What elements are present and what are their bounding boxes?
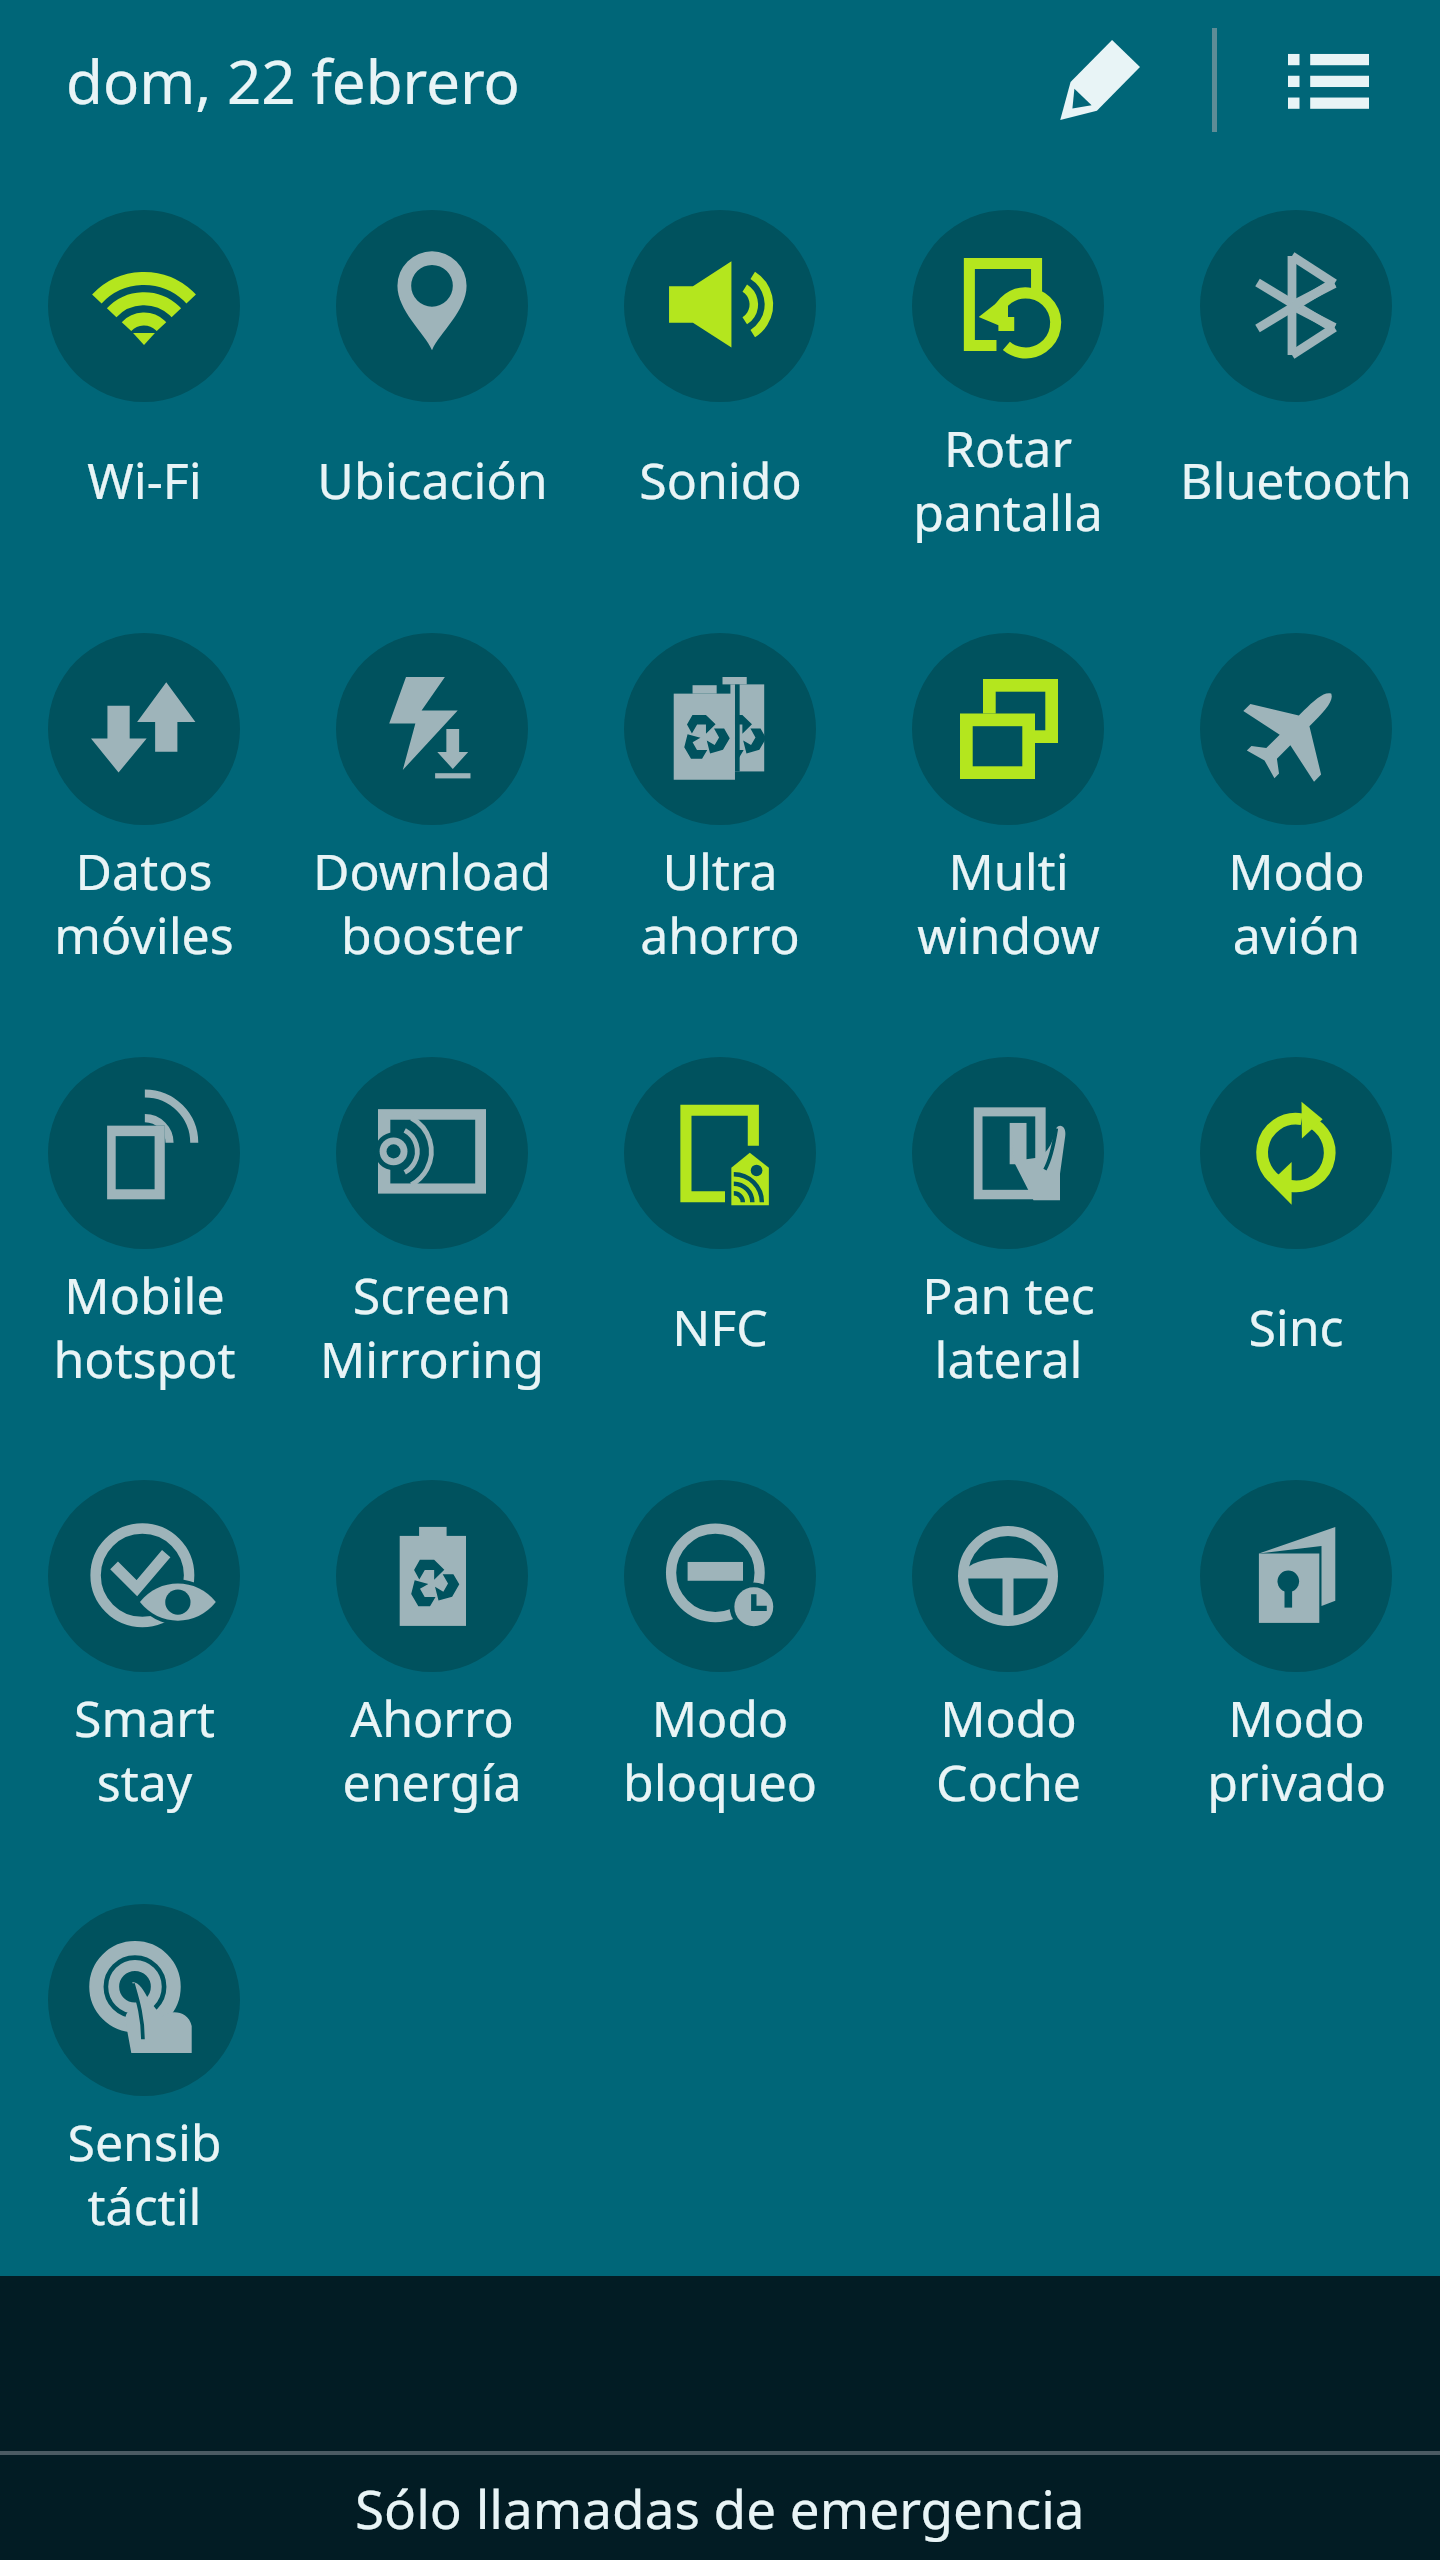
staticText: Sinc [1248,1293,1344,1361]
staticText: Ultra ahorro [640,837,800,969]
button[interactable]: NFC [576,1057,864,1397]
button[interactable]: Mobile hotspot [0,1057,288,1397]
staticText: Pan tec lateral [922,1261,1095,1393]
staticText: Bluetooth [1180,446,1412,514]
button[interactable]: Download booster [288,633,576,973]
staticText: Download booster [313,837,551,969]
button[interactable]: Sonido [576,210,864,550]
button[interactable]: Ubicación [288,210,576,550]
staticText: Modo bloqueo [623,1684,817,1816]
button[interactable]: Datos móviles [0,633,288,973]
staticText: Wi-Fi [87,446,202,514]
staticText: Sólo llamadas de emergencia [355,2472,1085,2544]
staticText: Modo Coche [936,1684,1081,1816]
button[interactable]: Ahorro energía [288,1480,576,1820]
staticText: Modo avión [1228,837,1365,969]
staticText: Smart stay [74,1684,215,1816]
staticText: Ahorro energía [342,1684,522,1816]
button[interactable]: Wi-Fi [0,210,288,550]
button[interactable]: Smart stay [0,1480,288,1820]
button[interactable]: Sinc [1152,1057,1440,1397]
staticText: Modo privado [1207,1684,1386,1816]
button[interactable]: Edit [1030,10,1170,150]
button[interactable]: Ultra ahorro [576,633,864,973]
button[interactable]: Sensib táctil [0,1904,288,2244]
button[interactable]: Rotar pantalla [864,210,1152,550]
button[interactable]: Modo bloqueo [576,1480,864,1820]
button[interactable]: Screen Mirroring [288,1057,576,1397]
button[interactable]: Bluetooth [1152,210,1440,550]
staticText: Ubicación [317,446,548,514]
button[interactable]: Modo Coche [864,1480,1152,1820]
button[interactable]: Multi window [864,633,1152,973]
staticText: Mobile hotspot [53,1261,236,1393]
button[interactable]: Modo avión [1152,633,1440,973]
button[interactable]: Pan tec lateral [864,1057,1152,1397]
staticText: Multi window [917,837,1100,969]
staticText: Screen Mirroring [320,1261,544,1393]
staticText: Sonido [639,446,802,514]
button[interactable]: Modo privado [1152,1480,1440,1820]
staticText: Rotar pantalla [913,414,1103,546]
staticText: dom, 22 febrero [66,40,520,122]
button[interactable]: Menu [1258,11,1398,151]
staticText: NFC [672,1293,768,1361]
staticText: Datos móviles [54,837,234,969]
staticText: Sensib táctil [67,2108,222,2240]
